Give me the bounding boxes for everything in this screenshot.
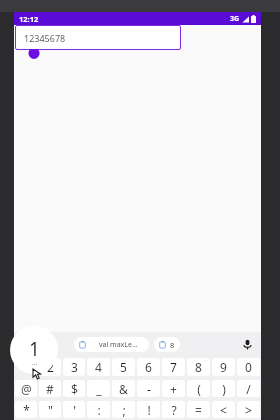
button[interactable]: ' xyxy=(63,401,85,418)
staticText: ) xyxy=(222,381,226,397)
button[interactable]: 1 xyxy=(15,358,37,376)
button[interactable]: ( xyxy=(187,380,210,397)
button[interactable]: Voice input xyxy=(239,336,255,352)
staticText: 6 xyxy=(145,359,152,375)
button[interactable]: = xyxy=(187,401,210,418)
staticText: 2 xyxy=(47,359,54,375)
staticText: - xyxy=(147,381,151,397)
button[interactable]: ? xyxy=(162,401,185,418)
staticText: 3G xyxy=(230,14,240,24)
button[interactable]: 7 xyxy=(162,358,185,376)
button[interactable]: 5 xyxy=(112,358,135,376)
staticText: 9 xyxy=(220,359,227,375)
staticText: " xyxy=(48,402,53,418)
staticText: 3 xyxy=(71,359,78,375)
staticText: 1 xyxy=(23,359,30,375)
button[interactable]: - xyxy=(137,380,160,397)
staticText: = xyxy=(195,402,202,418)
button[interactable]: " xyxy=(39,401,61,418)
staticText: 5 xyxy=(120,359,127,375)
staticText: 12:12 xyxy=(19,14,39,24)
staticText: ' xyxy=(73,402,76,418)
staticText: 8 xyxy=(195,359,202,375)
staticText: _ xyxy=(96,381,102,397)
button[interactable]: 2 xyxy=(39,358,61,376)
button[interactable]: @ xyxy=(15,380,37,397)
button[interactable]: ; xyxy=(112,401,135,418)
button[interactable]: _ xyxy=(87,380,110,397)
button[interactable]: 9 xyxy=(212,358,235,376)
button[interactable]: 6 xyxy=(137,358,160,376)
button[interactable]: * xyxy=(15,401,37,418)
button[interactable]: > xyxy=(237,401,260,418)
button[interactable]: + xyxy=(162,380,185,397)
staticText: > xyxy=(245,402,252,418)
button[interactable]: 8 xyxy=(187,358,210,376)
other: Text cursor handle xyxy=(27,46,41,60)
staticText: 4 xyxy=(95,359,102,375)
staticText: 1 xyxy=(29,336,40,362)
staticText: ! xyxy=(147,402,151,418)
staticText: $ xyxy=(71,381,78,397)
button[interactable]: 12345678 xyxy=(15,25,181,50)
button[interactable]: 0 xyxy=(237,358,260,376)
staticText: 8 xyxy=(170,340,175,350)
button[interactable]: : xyxy=(87,401,110,418)
staticText: ? xyxy=(171,402,177,418)
button[interactable]: ! xyxy=(137,401,160,418)
staticText: + xyxy=(170,381,177,397)
button[interactable]: val maxLe… xyxy=(74,337,149,352)
staticText: val maxLe… xyxy=(99,340,138,350)
button[interactable]: 8 xyxy=(154,337,180,352)
button[interactable]: / xyxy=(237,380,260,397)
staticText: # xyxy=(46,381,54,397)
staticText: < xyxy=(220,402,227,418)
staticText: ( xyxy=(197,381,201,397)
button[interactable]: & xyxy=(112,380,135,397)
staticText: * xyxy=(23,402,30,418)
staticText: : xyxy=(97,402,101,418)
button[interactable]: ) xyxy=(212,380,235,397)
button[interactable]: $ xyxy=(63,380,85,397)
staticText: @ xyxy=(21,381,32,397)
button[interactable]: 4 xyxy=(87,358,110,376)
staticText: / xyxy=(246,381,251,397)
staticText: 12345678 xyxy=(24,32,66,44)
button[interactable]: # xyxy=(39,380,61,397)
staticText: ; xyxy=(122,402,126,418)
staticText: & xyxy=(119,381,128,397)
button[interactable]: 3 xyxy=(63,358,85,376)
staticText: 7 xyxy=(170,359,177,375)
button[interactable]: < xyxy=(212,401,235,418)
staticText: 0 xyxy=(245,359,252,375)
